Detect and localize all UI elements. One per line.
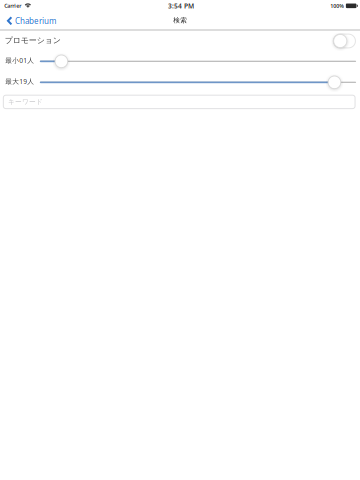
button[interactable]: Chaberium	[1, 13, 61, 29]
staticText: キーワード	[8, 98, 43, 106]
button[interactable]: プロモーション	[330, 31, 359, 51]
staticText: Chaberium	[15, 15, 56, 26]
staticText: 最小01人	[5, 56, 34, 65]
button[interactable]: 最大人数	[40, 75, 356, 90]
staticText: 最大19人	[5, 77, 34, 86]
staticText: Carrier	[4, 2, 21, 9]
button[interactable]: キーワード	[3, 95, 355, 109]
staticText: 100%	[330, 2, 344, 9]
button[interactable]: 最小人数	[40, 54, 356, 69]
staticText: 検索	[173, 16, 187, 24]
staticText: 3:54 PM	[168, 1, 194, 10]
staticText: プロモーション	[5, 35, 61, 45]
